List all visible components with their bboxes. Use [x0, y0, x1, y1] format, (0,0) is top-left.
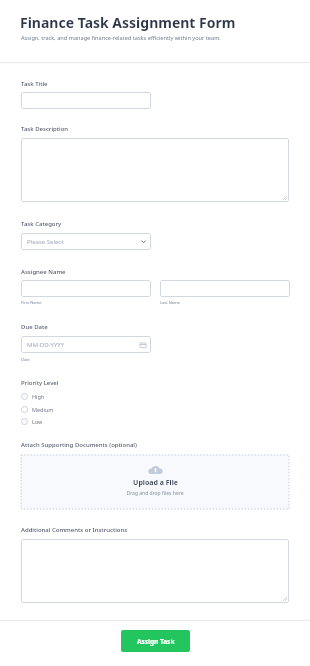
- button[interactable]: Assign Task: [121, 630, 190, 652]
- button[interactable]: [21, 92, 151, 109]
- staticText: Task Category: [21, 220, 62, 228]
- staticText: Priority Level: [21, 379, 59, 387]
- staticText: MM-DD-YYYY: [27, 341, 65, 349]
- staticText: Medium: [32, 406, 54, 413]
- staticText: High: [32, 393, 45, 400]
- button[interactable]: Low: [21, 416, 81, 427]
- staticText: Assign, track, and manage finance-relate…: [21, 34, 221, 42]
- staticText: Finance Task Assignment Form: [20, 13, 236, 32]
- staticText: Task Title: [21, 80, 48, 88]
- staticText: Task Description: [21, 125, 69, 133]
- staticText: Assign Task: [137, 637, 175, 646]
- button[interactable]: [21, 539, 289, 603]
- button[interactable]: [21, 138, 289, 202]
- button[interactable]: Please Select: [21, 233, 151, 250]
- button[interactable]: High: [21, 391, 81, 402]
- button[interactable]: [160, 280, 290, 297]
- button[interactable]: Medium: [21, 404, 81, 415]
- staticText: Last Name: [160, 300, 181, 305]
- staticText: Additional Comments or Instructions: [21, 526, 128, 534]
- staticText: Attach Supporting Documents (optional): [21, 441, 137, 449]
- staticText: Low: [32, 418, 43, 425]
- button[interactable]: [21, 280, 151, 297]
- staticText: Due Date: [21, 323, 48, 331]
- button[interactable]: Upload a File: [21, 455, 289, 509]
- staticText: Assignee Name: [21, 268, 66, 276]
- staticText: Upload a File: [133, 478, 178, 488]
- staticText: Please Select: [27, 238, 64, 246]
- button[interactable]: MM-DD-YYYY: [21, 336, 151, 353]
- staticText: First Name: [21, 300, 42, 305]
- staticText: Date: [21, 357, 30, 362]
- staticText: Drag and drop files here: [126, 490, 184, 497]
